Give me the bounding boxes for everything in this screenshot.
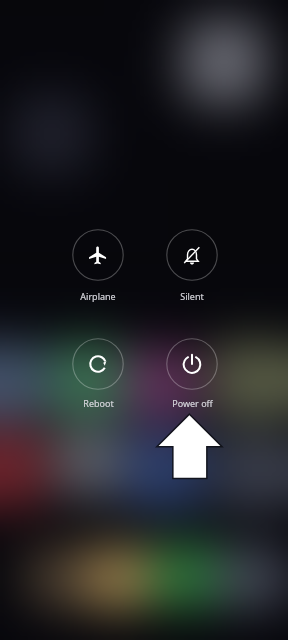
button[interactable]: Reboot [58, 338, 138, 416]
staticText: Airplane [80, 290, 116, 302]
button[interactable]: Power off [152, 338, 232, 416]
button[interactable]: Airplane mode [58, 229, 138, 307]
staticText: Reboot [83, 397, 114, 409]
button[interactable]: Silent mode [152, 229, 232, 307]
staticText: Power off [172, 397, 213, 409]
staticText: Silent [180, 290, 204, 302]
